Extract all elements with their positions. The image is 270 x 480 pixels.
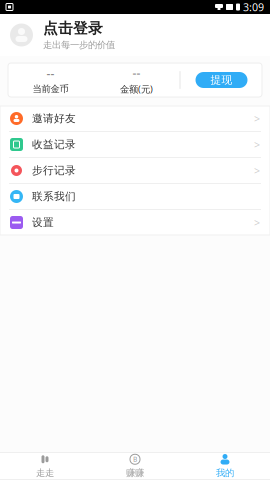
button[interactable]: 设置	[0, 210, 270, 235]
button[interactable]: 提现	[195, 72, 247, 88]
staticText: >	[254, 137, 260, 152]
button[interactable]: 联系我们	[0, 184, 270, 209]
staticText: 邀请好友	[32, 112, 76, 125]
button[interactable]: 我的	[180, 452, 270, 480]
staticText: 收益记录	[32, 138, 76, 151]
staticText: 走出每一步的价值	[43, 39, 115, 51]
staticText: >	[254, 215, 260, 230]
staticText: >	[254, 111, 260, 126]
staticText: 设置	[32, 216, 54, 229]
staticText: --	[132, 65, 140, 81]
staticText: 我的	[216, 467, 234, 479]
staticText: 赚赚	[126, 467, 144, 479]
button[interactable]: 点击登录	[0, 14, 270, 56]
staticText: 3:09	[243, 0, 264, 14]
staticText: 提现	[210, 73, 232, 86]
button[interactable]: 步行记录	[0, 158, 270, 183]
staticText: 当前金币	[32, 83, 68, 95]
staticText: 联系我们	[32, 190, 76, 203]
staticText: >	[254, 163, 260, 178]
button[interactable]: B	[90, 452, 180, 480]
staticText: 走走	[36, 467, 54, 479]
staticText: B	[133, 455, 137, 464]
button[interactable]: 走走	[0, 452, 90, 480]
staticText: 点击登录	[43, 19, 103, 37]
staticText: 金额(元)	[120, 83, 153, 95]
staticText: 步行记录	[32, 164, 76, 177]
button[interactable]: 收益记录	[0, 132, 270, 157]
staticText: --	[46, 65, 54, 81]
button[interactable]: 邀请好友	[0, 106, 270, 131]
